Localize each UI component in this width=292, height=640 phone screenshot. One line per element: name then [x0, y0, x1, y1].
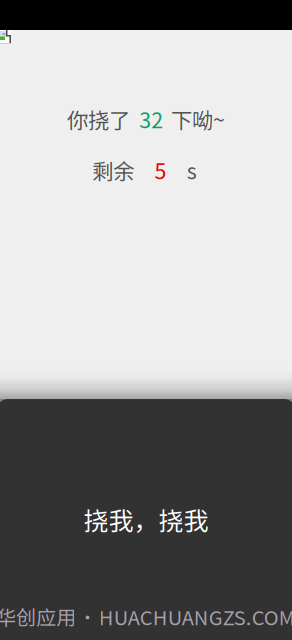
staticText: 你挠了 — [67, 104, 130, 134]
staticText: 5 — [154, 155, 166, 185]
button[interactable]: 挠我，挠我 — [0, 399, 292, 640]
staticText: 剩余 — [92, 155, 134, 185]
staticText: HUACHUANGZS.COM — [99, 602, 292, 631]
staticText: s — [187, 155, 197, 185]
staticText: 32 — [139, 104, 163, 134]
staticText: 挠我，挠我 — [83, 501, 208, 537]
staticText: 华创应用 — [0, 602, 76, 631]
staticText: 下呦~ — [171, 104, 225, 134]
